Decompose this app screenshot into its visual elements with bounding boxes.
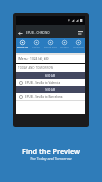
other: COACH (34, 40, 39, 45)
staticText: 8:00 AM (45, 74, 56, 78)
other: Back (18, 31, 23, 36)
staticText: EPUB - Sevilla to Barcelona (25, 95, 63, 99)
button[interactable]: 9:00 AM (16, 86, 85, 93)
other: Menu (78, 31, 83, 35)
button[interactable]: ONE RULE (71, 38, 85, 53)
staticText: COACH (32, 46, 40, 49)
other: TICKETS (62, 40, 67, 45)
button[interactable]: (Menu · 1024 (d), kB) (16, 55, 85, 63)
button[interactable]: COACH (29, 38, 43, 53)
other: ROUTE TIP (20, 40, 25, 45)
staticText: EPUB - CHRONO (26, 31, 50, 35)
staticText: For Today and Tomorrow (0, 156, 102, 161)
button[interactable]: 8:00 AM (16, 72, 85, 79)
button[interactable]: Back (16, 25, 85, 38)
staticText: ROUTE INFO (44, 46, 57, 49)
staticText: ONE RULE (73, 46, 84, 49)
button[interactable]: ROUTE TIP (16, 38, 29, 53)
staticText: 9:00 AM (45, 88, 56, 92)
staticText: TODAY AND TOMORROW (18, 66, 54, 70)
staticText: TICKETS (60, 46, 69, 49)
staticText: (Menu · 1024 (d), kB) (18, 57, 49, 61)
staticText: EPUB - Sevilla to Valencia (25, 81, 61, 85)
button[interactable]: EPUB - Sevilla to Valencia (16, 79, 85, 86)
other: ONE RULE (76, 40, 81, 45)
other: ROUTE INFO (48, 40, 53, 45)
staticText: Find the Preview (0, 146, 102, 156)
button[interactable]: ROUTE INFO (43, 38, 57, 53)
staticText: ROUTE TIP (17, 46, 28, 49)
button[interactable]: TICKETS (57, 38, 71, 53)
button[interactable]: EPUB - Sevilla to Barcelona (16, 93, 85, 100)
